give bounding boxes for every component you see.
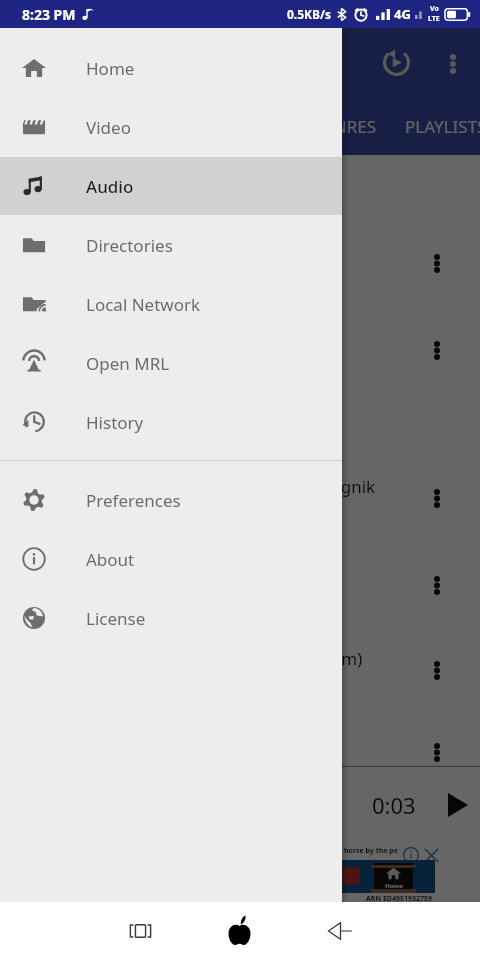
staticText: Unknown artist [87, 502, 188, 521]
button[interactable]: Open MRL [0, 334, 342, 392]
button[interactable]: Ve Maahi (Kesari Soundtrack from) [0, 627, 480, 713]
staticText: 0:03 [372, 790, 416, 820]
button[interactable]: Preferences [0, 471, 342, 529]
button[interactable]: About [0, 530, 342, 588]
staticText: About [86, 548, 135, 571]
button[interactable]: Dil Diyan Gallan - Atif [0, 307, 480, 393]
button[interactable]: Home [215, 906, 263, 954]
staticText: Mere Rashke Qamar - Nusrat Yagnik [87, 475, 376, 498]
button[interactable]: Sleep timer [372, 38, 420, 86]
staticText: Audio [86, 175, 134, 198]
button[interactable]: PLAYLISTS [405, 104, 480, 148]
staticText: Vo [430, 4, 439, 14]
button[interactable]: Track options [417, 565, 457, 605]
staticText: 8:23 PM [22, 5, 76, 24]
button[interactable]: License [0, 589, 342, 647]
button[interactable]: Shayad - Love Aaj Kal [0, 709, 480, 795]
button[interactable]: Track options [417, 732, 457, 772]
staticText: Open MRL [86, 352, 170, 375]
button[interactable]: Recents [116, 907, 164, 955]
button[interactable]: Audio [0, 157, 342, 215]
button[interactable]: Play [438, 785, 478, 825]
staticText: Home [385, 882, 403, 890]
staticText: Tera Ghata - Gajendra Verma [87, 240, 318, 263]
button[interactable]: Back [316, 907, 364, 955]
button[interactable]: Track options [417, 243, 457, 283]
button[interactable]: Bewafa Tera Masoom [0, 542, 480, 628]
staticText: Ve Maahi (Kesari Soundtrack from) [87, 647, 363, 670]
staticText: Unknown artist [87, 354, 188, 373]
staticText: 0.5KB/s [287, 6, 332, 22]
button[interactable]: Mere Rashke Qamar - Nusrat Yagnik [0, 455, 480, 541]
staticText: Directories [86, 234, 173, 257]
staticText: ARN ED4951932759 [366, 894, 433, 904]
button[interactable]: Track options [417, 650, 457, 690]
button[interactable]: Tera Ghata - Gajendra Verma [0, 220, 480, 306]
button[interactable]: Track options [417, 330, 457, 370]
staticText: Preferences [86, 489, 181, 512]
button[interactable]: Track options [417, 478, 457, 518]
button[interactable]: Video [0, 98, 342, 156]
button[interactable]: GENRES [312, 104, 377, 148]
staticText: horse by the pe [344, 846, 398, 856]
button[interactable]: Close ad [420, 844, 442, 866]
staticText: Bewafa Tera Masoom [87, 562, 259, 585]
staticText: License [86, 607, 146, 630]
staticText: Video [86, 116, 131, 139]
staticText: PLAYLISTS [405, 115, 480, 138]
staticText: Local Network [86, 293, 201, 316]
button[interactable]: History [0, 393, 342, 451]
button[interactable]: Ad info [400, 844, 422, 866]
staticText: 4G [394, 5, 411, 23]
button[interactable]: Local Network [0, 275, 342, 333]
button[interactable]: Directories [0, 216, 342, 274]
staticText: History [86, 411, 144, 434]
staticText: LTE [428, 14, 440, 24]
staticText: Home [86, 57, 135, 80]
staticText: GENRES [312, 115, 377, 138]
button[interactable]: Home [0, 39, 342, 97]
button[interactable]: More options [431, 42, 475, 86]
